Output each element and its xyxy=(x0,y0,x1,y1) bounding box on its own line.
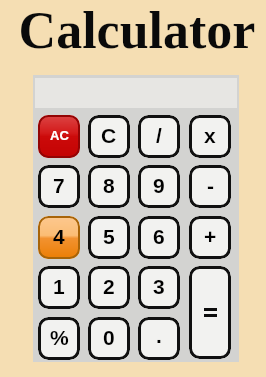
staticText: C xyxy=(101,124,117,147)
staticText: 5 xyxy=(103,225,115,248)
staticText: / xyxy=(156,124,162,147)
button[interactable]: x xyxy=(189,115,231,158)
staticText: 8 xyxy=(103,174,115,197)
button[interactable]: 2 xyxy=(88,266,130,309)
button[interactable]: . xyxy=(138,317,180,360)
button[interactable]: 9 xyxy=(138,165,180,208)
button[interactable]: AC xyxy=(38,115,80,158)
staticText: 2 xyxy=(103,275,115,298)
button[interactable]: % xyxy=(38,317,80,360)
button[interactable]: / xyxy=(138,115,180,158)
button[interactable]: 6 xyxy=(138,216,180,259)
staticText: 1 xyxy=(53,275,65,298)
staticText: 7 xyxy=(53,174,65,197)
button[interactable]: + xyxy=(189,216,231,259)
button[interactable] xyxy=(189,266,231,359)
button[interactable]: 0 xyxy=(88,317,130,360)
button[interactable]: C xyxy=(88,115,130,158)
staticText: 9 xyxy=(153,174,165,197)
staticText: % xyxy=(50,326,69,349)
staticText: 4 xyxy=(53,225,65,248)
button[interactable]: 7 xyxy=(38,165,80,208)
staticText: - xyxy=(207,174,214,197)
button[interactable]: - xyxy=(189,165,231,208)
button[interactable]: 3 xyxy=(138,266,180,309)
staticText: AC xyxy=(50,128,69,143)
button[interactable]: 1 xyxy=(38,266,80,309)
staticText: Calculator xyxy=(4,2,266,60)
staticText: + xyxy=(204,225,217,248)
button[interactable]: 8 xyxy=(88,165,130,208)
button[interactable]: 4 xyxy=(38,216,80,259)
staticText: 6 xyxy=(153,225,165,248)
staticText: x xyxy=(204,124,216,147)
button[interactable]: 5 xyxy=(88,216,130,259)
staticText: 3 xyxy=(153,275,165,298)
staticText: 0 xyxy=(103,326,115,349)
staticText: . xyxy=(156,324,162,347)
